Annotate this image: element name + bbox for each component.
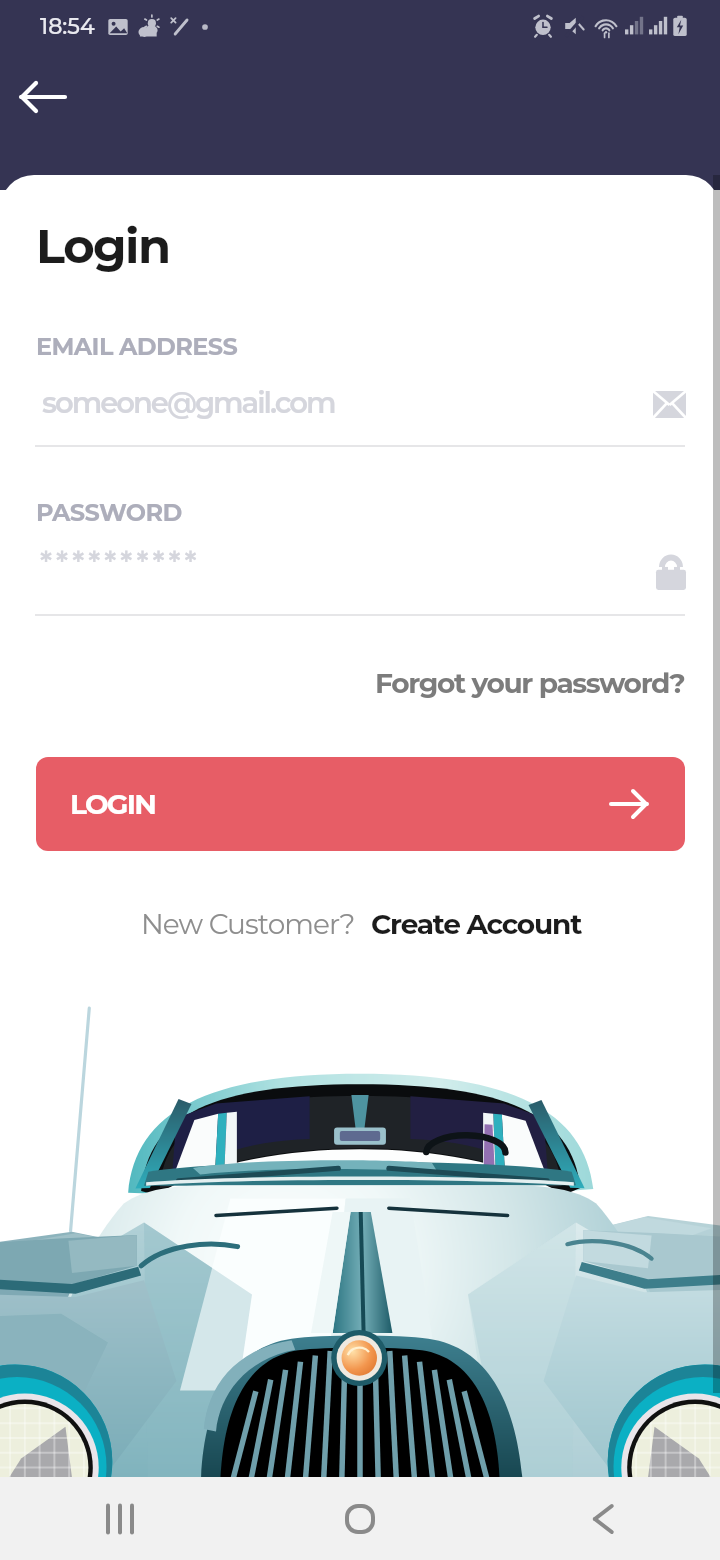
staticText: New Customer? [141,907,355,941]
staticText: someone@gmail.com [42,385,335,420]
button[interactable]: Create Account [371,907,582,941]
button[interactable]: LOGIN [36,757,685,851]
button[interactable]: Home [240,1477,480,1560]
staticText: * * * * * * * * * * [40,545,195,580]
button[interactable]: Forgot your password? [375,666,685,700]
staticText: 18:54 [40,13,95,40]
staticText: PASSWORD [36,498,182,527]
button[interactable]: Recent apps [0,1477,240,1560]
staticText: EMAIL ADDRESS [36,332,238,361]
button[interactable]: Back [480,1477,720,1560]
staticText: Login [36,217,170,276]
button[interactable]: Back [12,66,74,128]
staticText: LOGIN [70,787,156,821]
